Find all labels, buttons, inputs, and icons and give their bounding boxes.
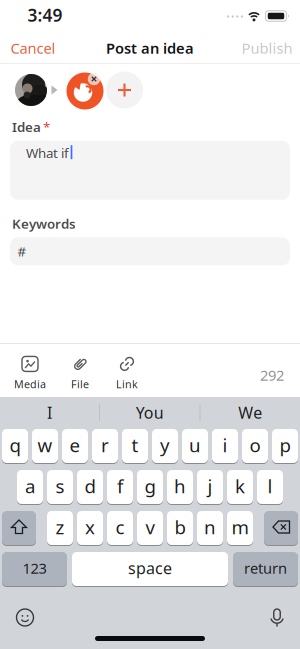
button[interactable]: f xyxy=(107,469,133,504)
button[interactable]: I xyxy=(0,396,99,428)
staticText: You xyxy=(136,402,164,423)
button[interactable] xyxy=(106,71,143,108)
button[interactable]: We xyxy=(200,396,300,428)
button[interactable]: d xyxy=(77,469,103,504)
staticText: r xyxy=(101,433,109,457)
button[interactable]: What if xyxy=(10,141,290,200)
staticText: o xyxy=(249,433,260,457)
staticText: t xyxy=(131,433,138,457)
button[interactable]: y xyxy=(152,428,178,463)
button[interactable]: v xyxy=(137,510,163,545)
staticText: l xyxy=(267,474,272,498)
staticText: b xyxy=(174,515,185,539)
button[interactable]: g xyxy=(137,469,163,504)
button[interactable]: File xyxy=(58,353,102,393)
staticText: 292 xyxy=(260,365,284,385)
button[interactable]: n xyxy=(197,510,223,545)
staticText: c xyxy=(115,515,124,539)
staticText: j xyxy=(207,474,212,498)
button[interactable] xyxy=(2,510,36,545)
button[interactable]: m xyxy=(227,510,253,545)
button[interactable]: z xyxy=(47,510,73,545)
staticText: Media xyxy=(14,377,46,391)
button[interactable]: t xyxy=(122,428,148,463)
button[interactable]: Publish xyxy=(241,38,292,58)
staticText: File xyxy=(71,377,89,391)
button[interactable] xyxy=(264,510,298,545)
staticText: 3:49 xyxy=(27,3,62,26)
staticText: h xyxy=(174,474,186,498)
button[interactable]: a xyxy=(17,469,43,504)
button[interactable]: c xyxy=(107,510,133,545)
button[interactable]: Cancel xyxy=(10,38,55,58)
button[interactable]: i xyxy=(212,428,238,463)
staticText: w xyxy=(37,433,52,457)
staticText: Link xyxy=(116,377,138,391)
button[interactable]: l xyxy=(257,469,283,504)
button[interactable]: return xyxy=(233,551,298,586)
staticText: We xyxy=(238,402,262,423)
button[interactable]: o xyxy=(242,428,268,463)
staticText: x xyxy=(85,515,95,539)
button[interactable]: 123 xyxy=(2,551,67,586)
button[interactable]: j xyxy=(197,469,223,504)
button[interactable]: e xyxy=(62,428,88,463)
staticText: d xyxy=(84,474,95,498)
button[interactable]: h xyxy=(167,469,193,504)
staticText: s xyxy=(55,474,64,498)
button[interactable]: You xyxy=(100,396,199,428)
button[interactable] xyxy=(10,602,40,632)
button[interactable]: k xyxy=(227,469,253,504)
staticText: q xyxy=(9,433,20,457)
staticText: Keywords xyxy=(12,215,76,232)
staticText: Post an idea xyxy=(106,38,194,58)
button[interactable] xyxy=(262,602,292,632)
staticText: 123 xyxy=(22,558,46,578)
button[interactable] xyxy=(65,68,104,112)
staticText: v xyxy=(145,515,154,539)
staticText: return xyxy=(244,558,287,578)
button[interactable]: x xyxy=(77,510,103,545)
button[interactable]: w xyxy=(32,428,58,463)
button[interactable]: q xyxy=(2,428,28,463)
button[interactable]: b xyxy=(167,510,193,545)
staticText: * xyxy=(43,118,50,136)
staticText: Idea xyxy=(12,118,41,136)
staticText: z xyxy=(55,515,64,539)
staticText: g xyxy=(144,474,155,498)
button[interactable]: p xyxy=(272,428,298,463)
staticText: I xyxy=(47,402,52,423)
staticText: a xyxy=(25,474,35,498)
staticText: f xyxy=(117,474,123,498)
staticText: m xyxy=(231,515,248,539)
staticText: e xyxy=(69,433,80,457)
staticText: What if xyxy=(26,144,69,162)
staticText: u xyxy=(189,433,201,457)
staticText: i xyxy=(222,433,227,457)
button[interactable]: s xyxy=(47,469,73,504)
button[interactable]: space xyxy=(72,551,228,586)
staticText: Cancel xyxy=(10,38,55,58)
button[interactable]: u xyxy=(182,428,208,463)
staticText: n xyxy=(204,515,216,539)
button[interactable] xyxy=(15,74,47,106)
staticText: # xyxy=(17,243,26,260)
button[interactable]: r xyxy=(92,428,118,463)
staticText: space xyxy=(128,557,172,579)
staticText: y xyxy=(160,433,170,457)
button[interactable]: Link xyxy=(105,353,149,393)
button[interactable]: # xyxy=(10,237,290,265)
staticText: Publish xyxy=(241,38,292,58)
staticText: k xyxy=(235,474,245,498)
staticText: p xyxy=(279,433,290,457)
button[interactable]: Media xyxy=(8,353,52,393)
